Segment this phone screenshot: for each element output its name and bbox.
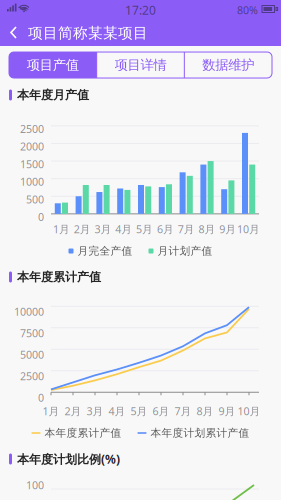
staticText: 4月 (108, 404, 125, 418)
staticText: 2月 (74, 222, 91, 236)
staticText: 6月 (157, 222, 174, 236)
button[interactable]: 数据维护 (184, 52, 272, 78)
staticText: 项目简称某某项目 (28, 24, 148, 42)
staticText: 7月 (178, 222, 195, 236)
button[interactable]: Back (8, 22, 24, 44)
button[interactable]: 项目详情 (97, 52, 184, 78)
staticText: 9月 (219, 222, 236, 236)
staticText: 1月 (53, 222, 70, 236)
staticText: 5月 (130, 404, 147, 418)
staticText: 80% (237, 3, 258, 17)
staticText: 100 (26, 478, 44, 492)
staticText: 本年度累计产值 (17, 270, 101, 284)
staticText: 2500 (20, 369, 44, 383)
staticText: 1000 (20, 175, 44, 189)
staticText: 0 (38, 210, 44, 224)
staticText: 17:20 (125, 2, 156, 18)
staticText: 2月 (64, 404, 81, 418)
staticText: 2500 (20, 122, 44, 136)
staticText: 10000 (14, 304, 44, 319)
staticText: 本年度计划比例(%) (17, 451, 120, 467)
staticText: 3月 (94, 222, 111, 236)
staticText: 月完全产值 (77, 244, 132, 257)
staticText: 3月 (86, 404, 103, 418)
staticText: 0 (38, 390, 44, 405)
staticText: 本年度计划累计产值 (150, 426, 249, 439)
staticText: 项目详情 (114, 57, 166, 73)
staticText: 5000 (20, 347, 44, 362)
staticText: 本年度累计产值 (44, 426, 121, 439)
staticText: 1月 (42, 404, 59, 418)
staticText: 500 (26, 192, 44, 206)
staticText: 项目产值 (27, 57, 79, 73)
staticText: 7500 (20, 326, 44, 340)
staticText: 6月 (152, 404, 169, 418)
staticText: 2000 (20, 139, 44, 154)
staticText: 数据维护 (202, 57, 254, 73)
staticText: 4月 (115, 222, 132, 236)
staticText: 10月 (237, 222, 260, 236)
staticText: 8月 (198, 222, 215, 236)
staticText: 10月 (237, 404, 260, 418)
staticText: 5月 (136, 222, 153, 236)
staticText: 1500 (20, 157, 44, 171)
staticText: 9月 (218, 404, 235, 418)
button[interactable]: 项目产值 (9, 52, 97, 78)
staticText: 7月 (174, 404, 191, 418)
staticText: 月计划产值 (157, 244, 212, 257)
staticText: 本年度月产值 (17, 88, 89, 102)
staticText: 8月 (196, 404, 213, 418)
